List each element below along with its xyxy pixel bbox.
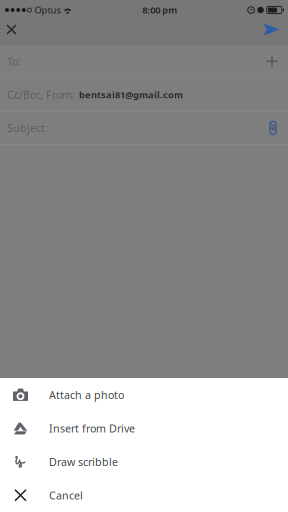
staticText: To: (7, 54, 21, 68)
staticText: Cc/Bcc, From: (7, 87, 75, 102)
staticText: Subject: (7, 121, 48, 135)
button[interactable]: Attach a photo (0, 378, 288, 411)
button[interactable]: Close (0, 20, 23, 39)
staticText: Cancel (49, 488, 83, 502)
button[interactable]: Cancel (0, 478, 288, 512)
button[interactable]: Send (255, 20, 288, 39)
staticText: Insert from Drive (49, 421, 135, 435)
staticText: bentsai81@gmail.com (79, 88, 183, 101)
button[interactable]: Add recipient (260, 49, 284, 73)
button[interactable]: Insert from Drive (0, 411, 288, 445)
staticText: Attach a photo (49, 388, 124, 402)
staticText: 8:00 pm (142, 4, 177, 16)
staticText: Draw scribble (49, 455, 118, 469)
staticText: Optus (34, 4, 60, 16)
button[interactable]: Draw scribble (0, 445, 288, 478)
button[interactable]: Attach file (262, 117, 284, 139)
